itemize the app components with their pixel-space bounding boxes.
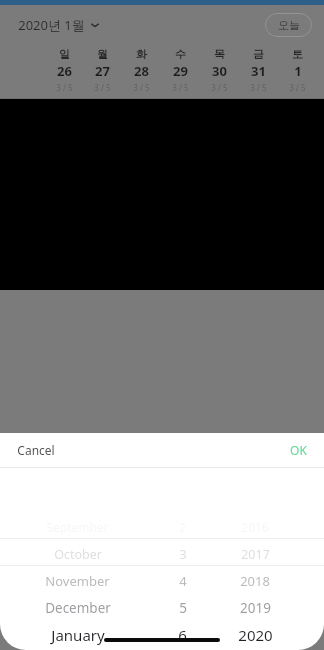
- staticText: 금: [253, 47, 264, 61]
- staticText: 1: [294, 62, 302, 80]
- button[interactable]: OK: [278, 433, 324, 467]
- staticText: 2017: [241, 546, 270, 563]
- staticText: October: [54, 546, 102, 563]
- staticText: November: [45, 572, 110, 590]
- staticText: 6: [178, 625, 187, 645]
- staticText: 3 / 5: [94, 82, 111, 93]
- button[interactable]: 2020년 1월: [16, 12, 102, 38]
- staticText: 2020: [238, 625, 273, 645]
- staticText: 30: [212, 62, 227, 80]
- staticText: 오늘: [278, 18, 300, 32]
- staticText: 4: [179, 572, 187, 590]
- staticText: 31: [251, 62, 266, 80]
- staticText: January: [51, 625, 105, 645]
- button[interactable]: 수: [161, 47, 200, 93]
- staticText: 27: [95, 62, 110, 80]
- staticText: 3 / 5: [289, 82, 306, 93]
- button[interactable]: 토: [278, 47, 317, 93]
- staticText: December: [45, 599, 111, 617]
- button[interactable]: 화: [122, 47, 161, 93]
- staticText: 화: [136, 47, 147, 61]
- staticText: Cancel: [17, 442, 55, 458]
- staticText: 2019: [240, 599, 271, 617]
- staticText: 2020년 1월: [18, 16, 85, 34]
- staticText: 목: [214, 47, 225, 61]
- staticText: 5: [179, 599, 187, 617]
- staticText: 28: [134, 62, 149, 80]
- staticText: 3 / 5: [172, 82, 189, 93]
- staticText: OK: [290, 442, 307, 458]
- button[interactable]: 금: [239, 47, 278, 93]
- button[interactable]: 오늘: [265, 13, 312, 37]
- staticText: 3 / 5: [211, 82, 228, 93]
- staticText: 일: [59, 47, 70, 61]
- staticText: 3 / 5: [133, 82, 150, 93]
- button[interactable]: Cancel: [0, 433, 67, 467]
- staticText: 3 / 5: [250, 82, 267, 93]
- staticText: 29: [173, 62, 188, 80]
- staticText: 3 / 5: [56, 82, 73, 93]
- button[interactable]: 목: [200, 47, 239, 93]
- staticText: 26: [57, 62, 72, 80]
- staticText: 3: [179, 546, 187, 563]
- staticText: 토: [292, 47, 303, 61]
- staticText: 2018: [240, 572, 270, 590]
- button[interactable]: 월: [83, 47, 122, 93]
- staticText: 월: [97, 47, 108, 61]
- button[interactable]: 일: [45, 47, 83, 93]
- staticText: 수: [175, 47, 186, 61]
